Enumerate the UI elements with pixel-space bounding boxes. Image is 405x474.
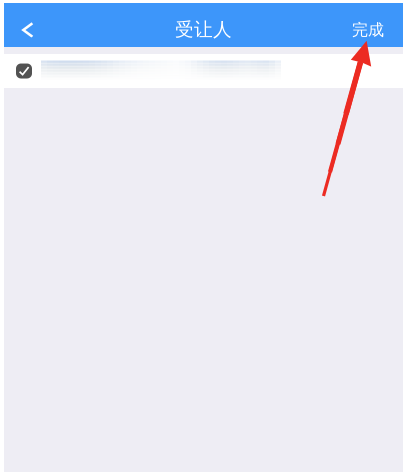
button[interactable]: 返回	[4, 3, 52, 47]
staticText: 受让人	[175, 18, 232, 41]
button[interactable]: 完成	[333, 3, 403, 47]
button[interactable]: 受让人	[4, 54, 403, 88]
staticText: 完成	[352, 20, 384, 40]
